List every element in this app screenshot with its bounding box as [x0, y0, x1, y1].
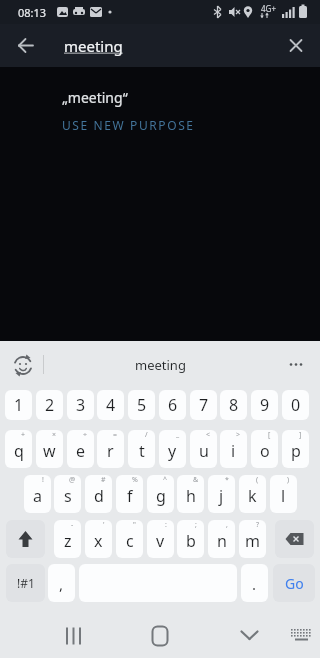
staticText: b	[186, 530, 196, 552]
staticText: 2	[45, 394, 55, 416]
staticText: 9	[260, 394, 270, 416]
button[interactable]	[275, 520, 314, 558]
staticText: m	[245, 530, 260, 552]
button[interactable]: 6	[159, 390, 186, 420]
button[interactable]: h	[177, 475, 204, 513]
button[interactable]: d	[85, 475, 112, 513]
button[interactable]: !#1	[6, 564, 45, 602]
staticText: .	[252, 574, 257, 594]
staticText: 4G+	[261, 3, 276, 14]
button[interactable]: j	[208, 475, 235, 513]
staticText: x	[94, 530, 103, 552]
staticText: !	[42, 475, 44, 485]
staticText: y	[168, 440, 177, 462]
button[interactable]: meeting	[64, 36, 123, 56]
button[interactable]: i	[220, 430, 247, 468]
staticText: "	[133, 520, 136, 530]
staticText: ]	[299, 430, 302, 440]
button[interactable]: w	[36, 430, 63, 468]
staticText: ×	[52, 430, 57, 440]
button[interactable]: y	[159, 430, 186, 468]
button[interactable]: „meeting“	[62, 88, 128, 107]
staticText: o	[260, 440, 270, 462]
button[interactable]: k	[239, 475, 266, 513]
staticText: -	[71, 520, 74, 530]
button[interactable]: x	[85, 520, 112, 558]
button[interactable]: l	[270, 475, 297, 513]
staticText: ,	[226, 520, 228, 530]
button[interactable]	[226, 614, 274, 658]
staticText: !#1	[17, 575, 35, 591]
staticText: p	[291, 440, 301, 462]
staticText: @	[69, 475, 76, 485]
button[interactable]	[0, 24, 48, 67]
button[interactable]: v	[147, 520, 174, 558]
staticText: '	[103, 520, 105, 530]
button[interactable]	[49, 614, 97, 658]
button[interactable]: r	[97, 430, 124, 468]
button[interactable]: s	[54, 475, 81, 513]
staticText: e	[76, 440, 86, 462]
button[interactable]: 5	[128, 390, 155, 420]
staticText: v	[156, 530, 165, 552]
staticText: Go	[285, 574, 304, 593]
staticText: ?	[256, 520, 260, 530]
staticText: i	[231, 440, 236, 462]
button[interactable]: p	[282, 430, 309, 468]
button[interactable]: USE NEW PURPOSE	[62, 117, 195, 133]
button[interactable]: 9	[251, 390, 278, 420]
button[interactable]: n	[208, 520, 235, 558]
staticText: r	[107, 440, 114, 462]
button[interactable]	[6, 520, 45, 558]
button[interactable]: 3	[67, 390, 94, 420]
button[interactable]: u	[190, 430, 217, 468]
staticText: h	[186, 485, 196, 507]
staticText: g	[156, 485, 166, 507]
button[interactable]	[6, 345, 42, 384]
staticText: +	[21, 430, 26, 440]
staticText: l	[281, 485, 286, 507]
button[interactable]: q	[5, 430, 32, 468]
staticText: #	[101, 475, 106, 485]
button[interactable]	[136, 614, 184, 658]
staticText: k	[248, 485, 257, 507]
staticText: =	[113, 430, 118, 440]
staticText: [	[268, 430, 271, 440]
button[interactable]	[283, 614, 319, 658]
staticText: %	[132, 475, 138, 485]
staticText: 4	[106, 394, 116, 416]
staticText: *	[225, 475, 229, 485]
button[interactable]: 8	[220, 390, 247, 420]
button[interactable]: f	[116, 475, 143, 513]
button[interactable]: .	[241, 564, 268, 602]
button[interactable]: m	[239, 520, 266, 558]
button[interactable]: 7	[190, 390, 217, 420]
button[interactable]: Go	[273, 564, 315, 602]
button[interactable]: e	[67, 430, 94, 468]
button[interactable]: t	[128, 430, 155, 468]
staticText: 6	[168, 394, 178, 416]
staticText: u	[199, 440, 209, 462]
button[interactable]: o	[251, 430, 278, 468]
button[interactable]: 4	[97, 390, 124, 420]
button[interactable]: 2	[36, 390, 63, 420]
button[interactable]	[280, 341, 320, 388]
staticText: 3	[76, 394, 86, 416]
staticText: &	[193, 475, 199, 485]
staticText: s	[64, 485, 72, 507]
staticText: a	[33, 485, 42, 507]
button[interactable]: meeting	[135, 356, 186, 374]
button[interactable]: 0	[282, 390, 309, 420]
button[interactable]: c	[116, 520, 143, 558]
button[interactable]: ,	[48, 564, 75, 602]
button[interactable]: 1	[5, 390, 32, 420]
button[interactable]	[272, 24, 320, 67]
button[interactable]: z	[54, 520, 81, 558]
staticText: f	[127, 485, 133, 507]
staticText: j	[219, 485, 224, 507]
button[interactable]: a	[24, 475, 51, 513]
staticText: 8	[229, 394, 239, 416]
button[interactable]: b	[177, 520, 204, 558]
button[interactable]: g	[147, 475, 174, 513]
